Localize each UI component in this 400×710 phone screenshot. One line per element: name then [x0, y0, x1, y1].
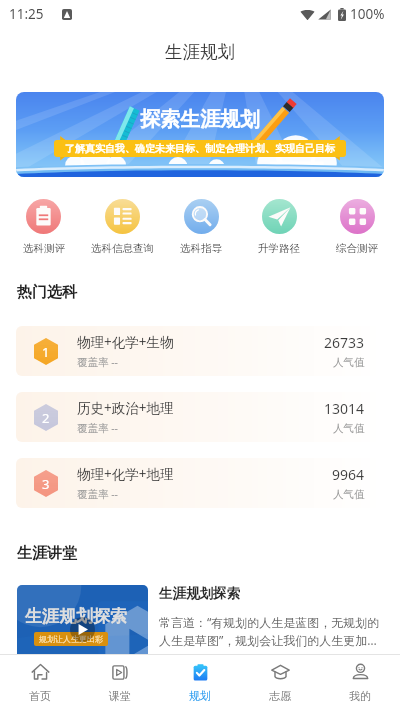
button[interactable]: 规划	[160, 655, 240, 710]
button[interactable]: 选科指导	[162, 199, 240, 255]
staticText: 1	[42, 343, 50, 361]
button[interactable]: 综合测评	[318, 199, 396, 255]
button[interactable]: 探索生涯规划	[16, 92, 384, 177]
staticText: 人气值	[333, 422, 365, 435]
staticText: 首页	[29, 689, 51, 703]
staticText: 常言道：“有规划的人生是蓝图，无规划的人生是草图”，规划会让我们的人生更加…	[159, 614, 387, 649]
staticText: 探索生涯规划	[140, 107, 260, 132]
button[interactable]: 升学路径	[240, 199, 318, 255]
staticText: 规划	[189, 689, 211, 703]
staticText: 选科指导	[180, 242, 222, 255]
staticText: 100%	[350, 5, 385, 23]
staticText: 热门选科	[17, 283, 77, 302]
staticText: 11:25	[9, 5, 44, 23]
staticText: 覆盖率 --	[77, 355, 118, 369]
staticText: 生涯规划	[165, 41, 235, 63]
staticText: 综合测评	[336, 242, 378, 255]
staticText: 人气值	[333, 356, 365, 369]
other: 播放	[70, 617, 95, 642]
staticText: 课堂	[109, 689, 131, 703]
staticText: 选科信息查询	[91, 242, 154, 255]
staticText: 人气值	[333, 488, 365, 501]
staticText: 生涯规划探索	[159, 585, 240, 602]
button[interactable]: 生涯规划探索	[17, 585, 387, 659]
staticText: 志愿	[269, 689, 291, 703]
button[interactable]: 首页	[0, 655, 80, 710]
staticText: 选科测评	[23, 242, 65, 255]
staticText: 13014	[324, 399, 365, 418]
button[interactable]: 课堂	[80, 655, 160, 710]
staticText: 历史+政治+地理	[77, 399, 174, 417]
staticText: 生涯规划探索	[25, 606, 127, 627]
staticText: 规划让人生更出彩	[39, 634, 103, 644]
staticText: 3	[42, 475, 50, 493]
button[interactable]: 选科信息查询	[83, 199, 162, 255]
staticText: 26733	[324, 333, 365, 352]
staticText: 物理+化学+地理	[77, 465, 174, 483]
button[interactable]: 我的	[320, 655, 400, 710]
staticText: 物理+化学+生物	[77, 333, 174, 351]
staticText: 生涯讲堂	[17, 544, 77, 563]
staticText: 了解真实自我、确定未来目标、制定合理计划、实现自己目标	[65, 142, 335, 155]
staticText: 2	[42, 409, 50, 427]
staticText: 覆盖率 --	[77, 421, 118, 435]
staticText: 升学路径	[258, 242, 300, 255]
staticText: 覆盖率 --	[77, 487, 118, 501]
button[interactable]: 3	[16, 458, 384, 508]
button[interactable]: 1	[16, 326, 384, 376]
button[interactable]: 选科测评	[4, 199, 83, 255]
staticText: 我的	[349, 689, 371, 703]
staticText: 9964	[332, 465, 365, 484]
button[interactable]: 2	[16, 392, 384, 442]
button[interactable]: 志愿	[240, 655, 320, 710]
